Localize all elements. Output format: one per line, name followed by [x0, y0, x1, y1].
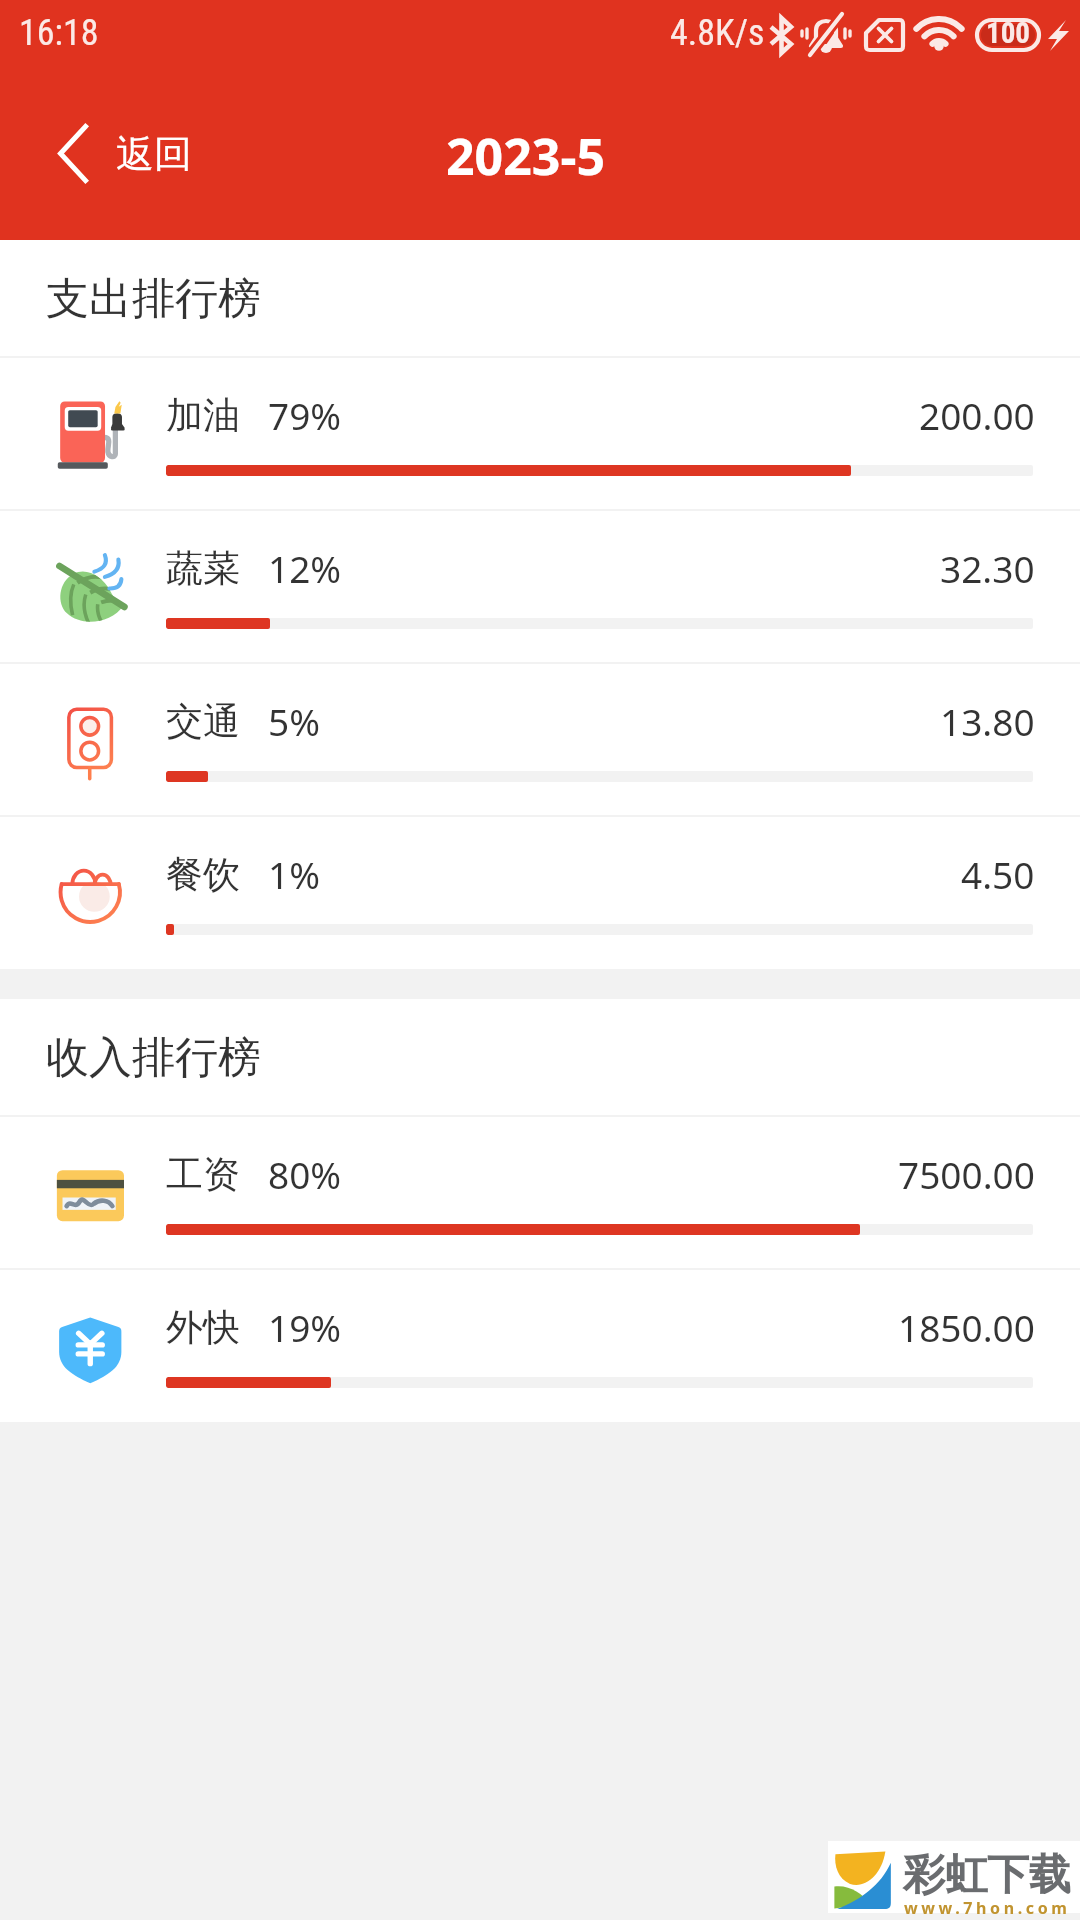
button[interactable]: 加油 [0, 358, 1080, 511]
staticText: 4.50 [961, 849, 1035, 899]
staticText: 1% [268, 849, 320, 899]
button[interactable]: 蔬菜 [0, 511, 1080, 664]
staticText: 蔬菜 [166, 545, 240, 592]
staticText: 彩虹下载 [903, 1849, 1071, 1902]
staticText: 200.00 [919, 390, 1035, 440]
staticText: 4.8K/s [670, 12, 765, 54]
staticText: 12% [268, 543, 342, 593]
staticText: 加油 [166, 392, 240, 439]
staticText: 79% [268, 390, 342, 440]
button[interactable]: 返回 [0, 94, 222, 213]
staticText: 交通 [166, 698, 240, 745]
staticText: 餐饮 [166, 851, 240, 898]
staticText: 16:18 [19, 12, 99, 54]
button[interactable]: 交通 [0, 664, 1080, 817]
staticText: www.7hon.com [904, 1897, 1071, 1919]
staticText: 32.30 [940, 543, 1035, 593]
staticText: 19% [268, 1302, 342, 1352]
staticText: 外快 [166, 1304, 240, 1351]
staticText: 1850.00 [898, 1302, 1035, 1352]
staticText: 收入排行榜 [46, 1031, 261, 1085]
button[interactable]: 工资 [0, 1117, 1080, 1270]
staticText: 13.80 [940, 696, 1035, 746]
staticText: 工资 [166, 1151, 240, 1198]
staticText: 支出排行榜 [46, 272, 261, 326]
staticText: 返回 [116, 130, 192, 178]
button[interactable]: 外快 [0, 1270, 1080, 1422]
staticText: 7500.00 [898, 1149, 1035, 1199]
staticText: 2023-5 [446, 122, 605, 190]
staticText: 80% [268, 1149, 342, 1199]
button[interactable]: 餐饮 [0, 817, 1080, 969]
staticText: 5% [268, 696, 320, 746]
staticText: 100 [986, 16, 1031, 50]
